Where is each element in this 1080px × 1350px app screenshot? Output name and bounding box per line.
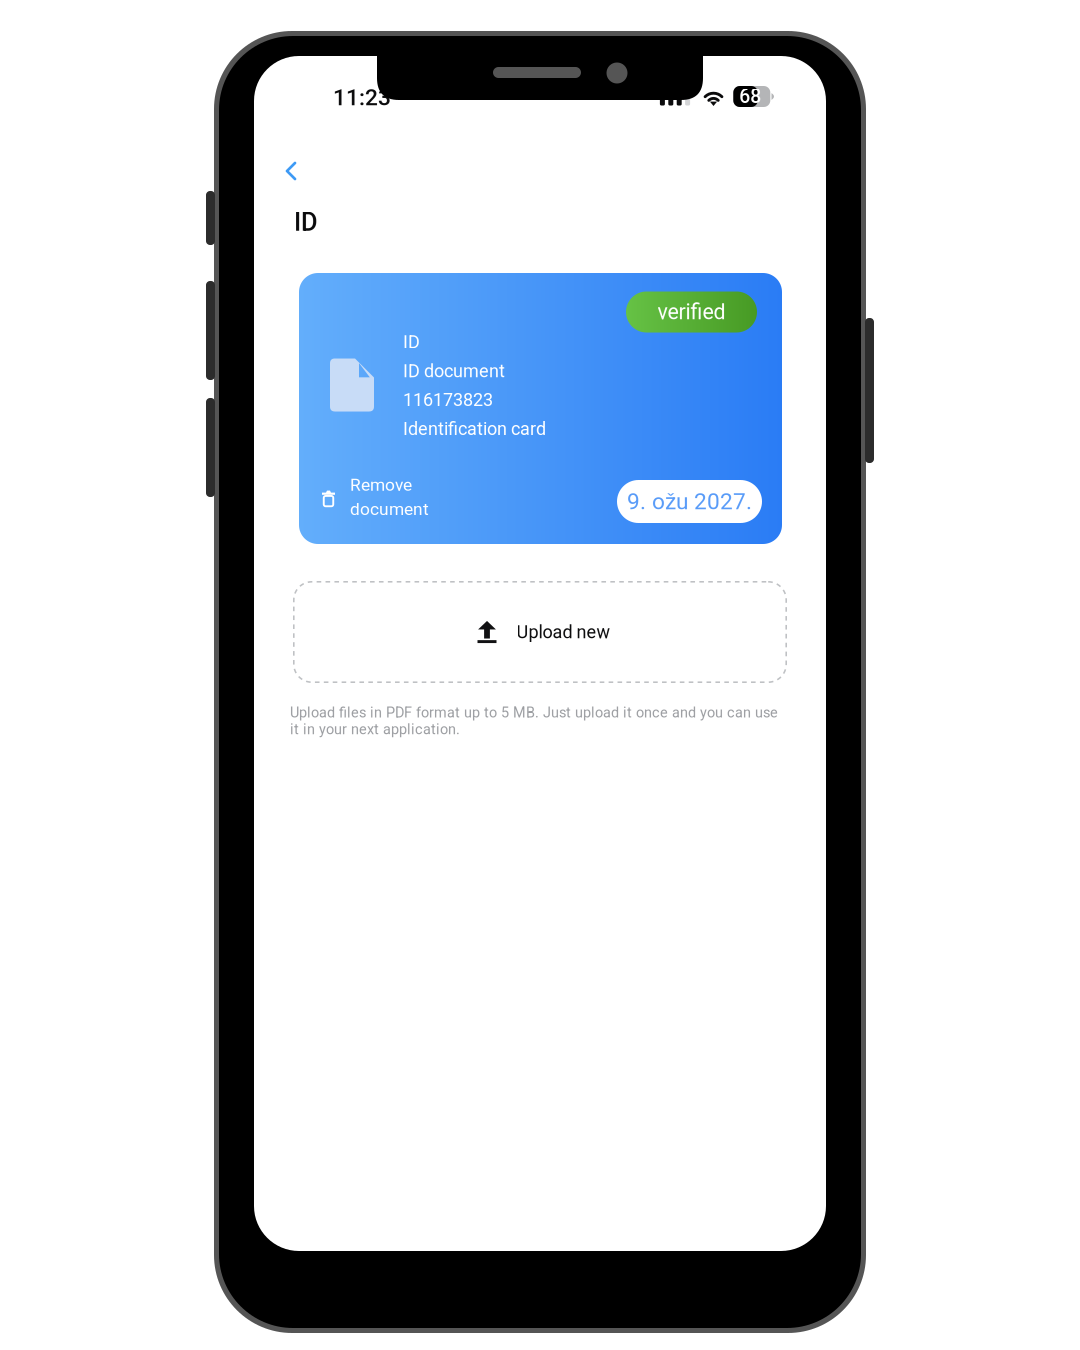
staticText: 9. ožu 2027. bbox=[627, 488, 752, 515]
button[interactable]: Upload new bbox=[293, 581, 787, 683]
staticText: Upload new bbox=[516, 621, 610, 643]
staticText: 11:23 bbox=[333, 84, 391, 111]
staticText: ID bbox=[294, 207, 318, 237]
staticText: Remove bbox=[350, 475, 412, 495]
button[interactable]: Back bbox=[271, 151, 311, 191]
staticText: verified bbox=[657, 299, 725, 324]
staticText: ID document bbox=[403, 360, 505, 382]
staticText: ID bbox=[403, 332, 420, 353]
staticText: Identification card bbox=[403, 418, 546, 439]
staticText: Upload files in PDF format up to 5 MB. J… bbox=[290, 704, 778, 738]
staticText: 116173823 bbox=[403, 389, 493, 410]
staticText: 68 bbox=[739, 85, 761, 108]
staticText: document bbox=[350, 499, 429, 519]
